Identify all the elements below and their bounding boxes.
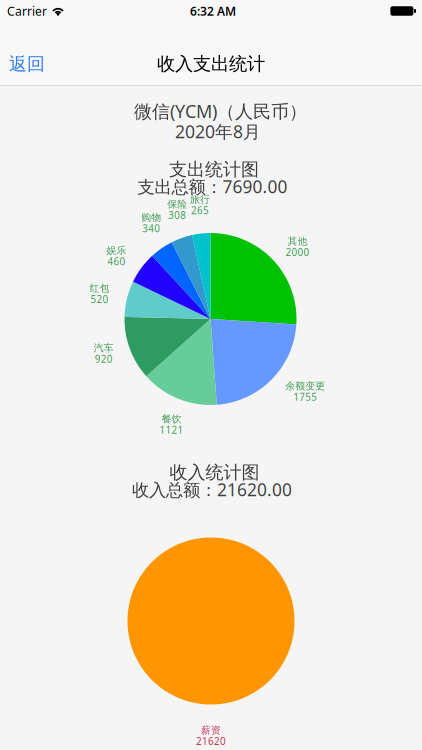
staticText: 支出统计图 <box>169 158 259 181</box>
staticText: 保险 <box>167 198 187 210</box>
staticText: 其他 <box>288 235 308 247</box>
button[interactable]: 返回 <box>0 45 65 83</box>
staticText: 红包 <box>89 282 109 294</box>
staticText: 收入支出统计 <box>157 52 265 75</box>
staticText: 340 <box>142 222 160 235</box>
staticText: 1121 <box>160 423 184 437</box>
staticText: 旅行 <box>190 193 210 206</box>
staticText: 920 <box>95 352 113 366</box>
staticText: 薪资 <box>201 724 221 736</box>
staticText: 购物 <box>141 211 161 224</box>
staticText: 2000 <box>286 245 310 259</box>
staticText: 6:32 AM <box>190 3 236 19</box>
staticText: 返回 <box>9 53 45 75</box>
staticText: 460 <box>107 255 125 268</box>
staticText: 308 <box>168 208 186 222</box>
staticText: 娱乐 <box>106 244 126 257</box>
staticText: 餐饮 <box>162 413 182 425</box>
staticText: 21620 <box>196 734 226 748</box>
staticText: 520 <box>90 292 108 306</box>
staticText: 2020年8月 <box>175 119 261 143</box>
staticText: 微信(YCM)（人民币） <box>134 99 307 123</box>
staticText: 余额变更 <box>285 380 325 392</box>
staticText: 265 <box>191 204 209 217</box>
staticText: 汽车 <box>94 342 114 354</box>
staticText: 收入总额：21620.00 <box>132 478 292 501</box>
staticText: 支出总额：7690.00 <box>137 175 287 198</box>
staticText: Carrier <box>7 3 47 19</box>
staticText: 1755 <box>293 390 317 403</box>
staticText: 收入统计图 <box>169 461 259 484</box>
